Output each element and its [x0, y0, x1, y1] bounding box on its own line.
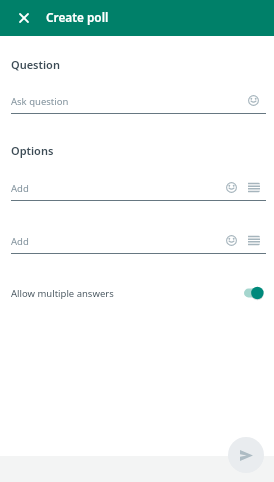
- button[interactable]: Reorder option: [246, 233, 261, 248]
- staticText: Add: [11, 235, 29, 248]
- staticText: Add: [11, 182, 29, 195]
- button[interactable]: Reorder option: [246, 180, 261, 195]
- staticText: Ask question: [11, 95, 69, 108]
- button[interactable]: Emoji: [224, 233, 239, 248]
- button[interactable]: Add: [11, 174, 221, 201]
- button[interactable]: Emoji: [224, 180, 239, 195]
- button[interactable]: Ask question: [11, 87, 243, 114]
- button[interactable]: [244, 286, 265, 300]
- staticText: Allow multiple answers: [11, 287, 114, 300]
- button[interactable]: Close: [11, 5, 36, 30]
- button[interactable]: Emoji: [246, 93, 261, 108]
- button[interactable]: Add: [11, 227, 221, 254]
- staticText: Create poll: [46, 9, 109, 25]
- staticText: Options: [11, 143, 54, 158]
- button[interactable]: Send: [228, 437, 264, 473]
- staticText: Question: [11, 57, 60, 72]
- button[interactable]: Allow multiple answers: [0, 283, 274, 303]
